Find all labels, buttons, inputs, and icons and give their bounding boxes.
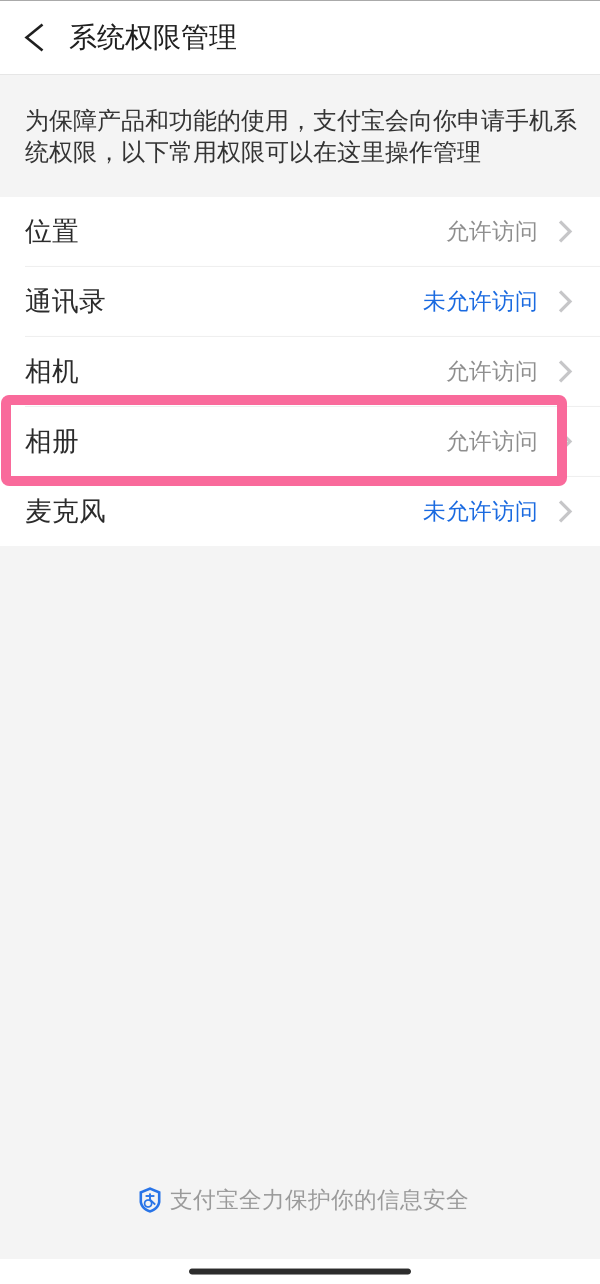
staticText: 允许访问	[446, 357, 538, 385]
staticText: 为保障产品和功能的使用，支付宝会向你申请手机系统权限，以下常用权限可以在这里操作…	[25, 106, 577, 167]
staticText: 相册	[25, 425, 79, 458]
button[interactable]: 通讯录	[0, 267, 600, 336]
staticText: 未允许访问	[423, 497, 538, 525]
staticText: 相机	[25, 355, 79, 388]
staticText: 允许访问	[446, 427, 538, 455]
staticText: 未允许访问	[423, 287, 538, 315]
staticText: 通讯录	[25, 285, 106, 318]
staticText: 麦克风	[25, 495, 106, 528]
staticText: 允许访问	[446, 217, 538, 245]
staticText: 支付宝全力保护你的信息安全	[170, 1186, 469, 1214]
button[interactable]: 返回	[0, 0, 69, 74]
button[interactable]: 位置	[0, 197, 600, 266]
staticText: 系统权限管理	[69, 20, 237, 55]
button[interactable]: 麦克风	[0, 477, 600, 546]
button[interactable]: 相册	[0, 407, 600, 476]
staticText: 位置	[25, 215, 79, 248]
button[interactable]: 相机	[0, 337, 600, 406]
